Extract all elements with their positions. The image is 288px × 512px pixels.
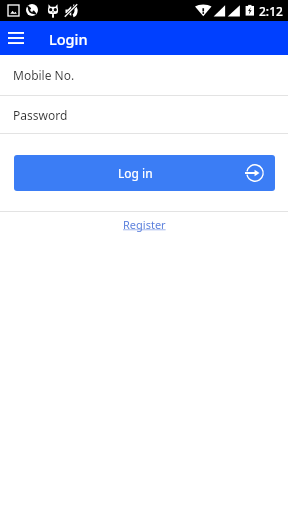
staticText: Login — [49, 29, 88, 49]
staticText: Password — [13, 107, 68, 123]
button[interactable]: Register — [119, 215, 170, 234]
button[interactable]: Password — [0, 96, 288, 133]
button[interactable]: Mobile No. — [0, 55, 288, 95]
staticText: Mobile No. — [13, 67, 75, 83]
staticText: Log in — [118, 165, 153, 181]
button[interactable]: Open navigation menu — [0, 21, 32, 55]
staticText: 2:12 — [259, 3, 283, 19]
button[interactable]: Log in — [14, 155, 275, 191]
other: Log in — [244, 162, 266, 184]
